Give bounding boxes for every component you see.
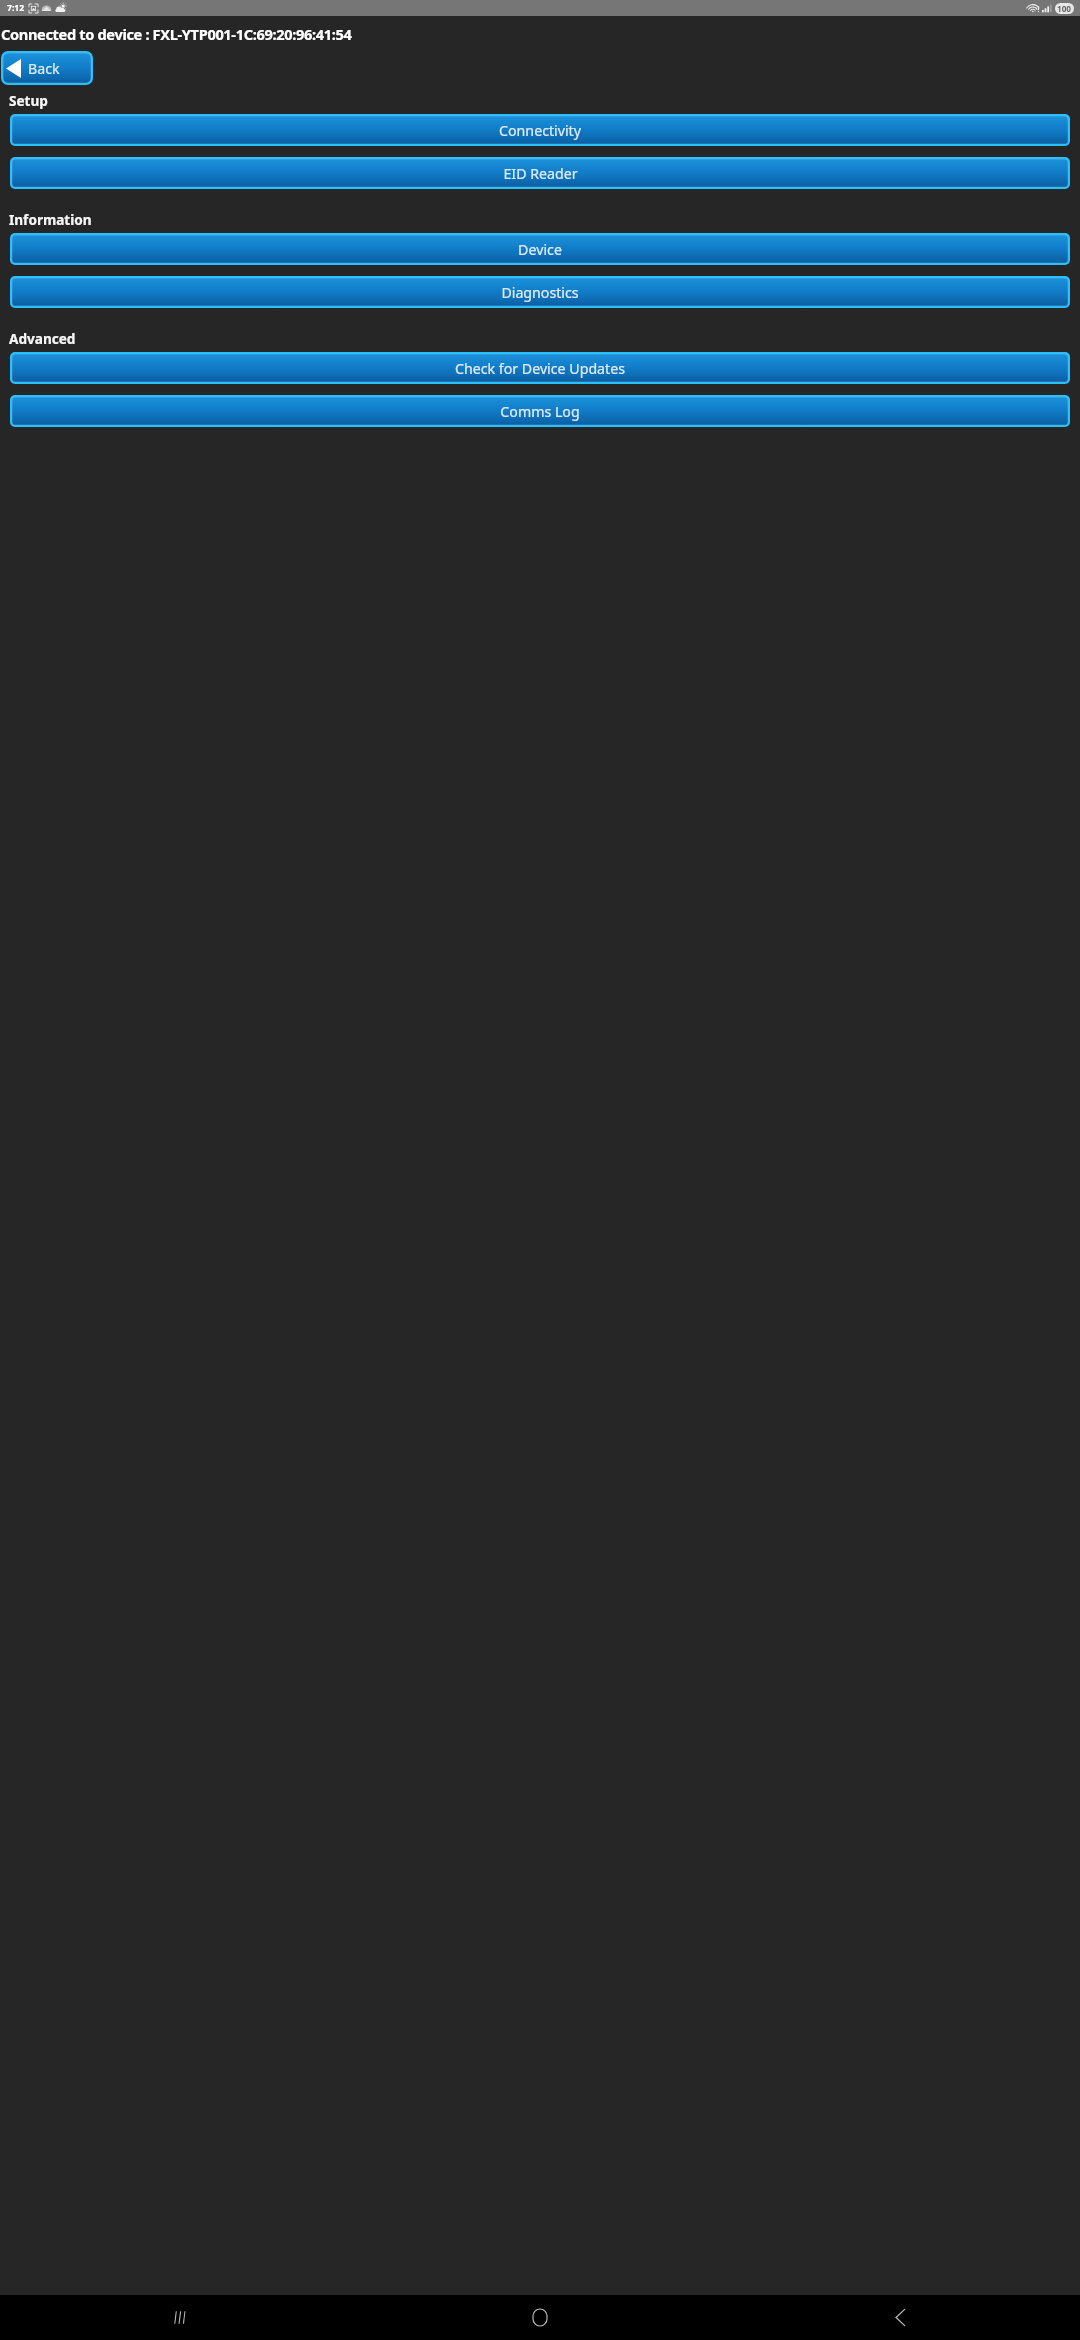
staticText: Comms Log — [500, 402, 580, 421]
staticText: Advanced — [9, 329, 76, 348]
button[interactable]: Back — [720, 2295, 1080, 2340]
staticText: Information — [9, 210, 92, 229]
staticText: Back — [28, 59, 60, 78]
staticText: Diagnostics — [501, 283, 579, 302]
button[interactable]: Recent apps — [0, 2295, 360, 2340]
staticText: 100 — [1057, 3, 1072, 14]
button[interactable]: Check for Device Updates — [10, 352, 1070, 384]
button[interactable]: Comms Log — [10, 395, 1070, 427]
staticText: Connectivity — [499, 121, 581, 140]
staticText: EID Reader — [503, 164, 578, 183]
button[interactable]: Home — [360, 2295, 720, 2340]
staticText: Device — [518, 240, 562, 259]
staticText: Check for Device Updates — [455, 359, 625, 378]
button[interactable]: Diagnostics — [10, 276, 1070, 308]
button[interactable]: Device — [10, 233, 1070, 265]
staticText: Setup — [9, 91, 48, 110]
staticText: 7:12 — [7, 2, 25, 14]
button[interactable]: Back — [1, 51, 93, 85]
button[interactable]: EID Reader — [10, 157, 1070, 189]
staticText: Connected to device : FXL-YTP001-1C:69:2… — [1, 24, 352, 44]
button[interactable]: Connectivity — [10, 114, 1070, 146]
